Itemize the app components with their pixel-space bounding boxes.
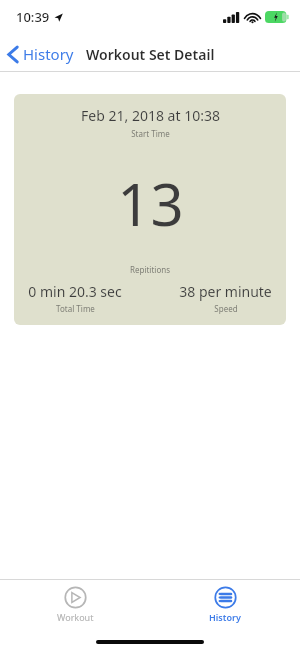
staticText: 0 min 20.3 sec <box>28 282 122 301</box>
staticText: Feb 21, 2018 at 10:38 <box>81 106 220 125</box>
staticText: Speed <box>214 303 238 314</box>
button[interactable]: Feb 21, 2018 at 10:38 <box>14 94 286 325</box>
staticText: History <box>23 44 74 64</box>
staticText: Workout Set Detail <box>86 45 215 64</box>
staticText: 10:39 <box>16 8 50 26</box>
staticText: Total Time <box>56 303 95 314</box>
staticText: Start Time <box>131 128 170 139</box>
button[interactable]: History tab <box>191 583 259 626</box>
staticText: 13 <box>117 164 184 243</box>
staticText: Repititions <box>130 264 170 275</box>
staticText: History <box>209 611 241 623</box>
button[interactable]: History <box>0 40 82 68</box>
button[interactable]: Workout tab <box>39 583 112 626</box>
staticText: 38 per minute <box>179 282 272 301</box>
staticText: Workout <box>57 611 94 623</box>
